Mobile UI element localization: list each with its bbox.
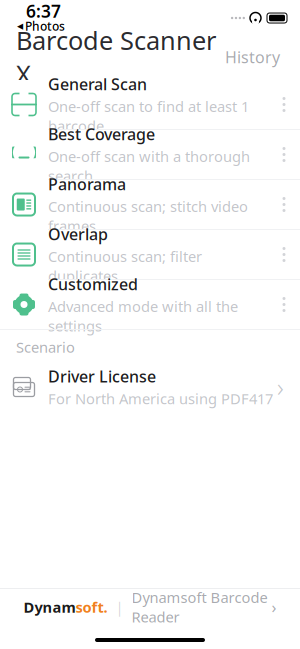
staticText: Panorama [48,173,126,195]
button[interactable]: Driver License [0,364,300,410]
button[interactable]: History [221,38,284,76]
staticText: History [225,46,280,68]
staticText: Dynam [23,597,75,617]
button[interactable]: Dynam [0,589,300,625]
staticText: | [107,597,131,617]
staticText: Continuous scan; stitch video frames [48,197,248,236]
staticText: Photos [25,18,65,34]
staticText: Customized [48,273,138,295]
staticText: Advanced mode with all the settings [48,297,238,336]
staticText: 6:37 [26,0,61,22]
button[interactable]: More options [268,82,300,126]
button[interactable]: More options [268,182,300,226]
staticText: General Scan [48,73,147,95]
staticText: Driver License [48,366,156,387]
button[interactable]: General Scan [0,80,300,129]
staticText: › [277,370,284,404]
staticText: Continuous scan; filter duplicates [48,247,202,286]
button[interactable]: Overlap [0,230,300,279]
staticText: › [267,596,276,618]
button[interactable]: Panorama [0,180,300,229]
button[interactable]: Customized [0,280,300,329]
staticText: Barcode Scanner X [16,23,216,91]
staticText: For North America using PDF417 [48,389,273,408]
button[interactable]: More options [268,132,300,176]
button[interactable]: More options [268,232,300,276]
button[interactable]: More options [268,282,300,326]
staticText: Overlap [48,223,108,245]
staticText: Scenario [16,337,75,357]
staticText: ◀ [17,21,23,31]
staticText: soft. [75,597,107,617]
staticText: Best Coverage [48,123,155,145]
staticText: Dynamsoft Barcode Reader [131,587,267,626]
staticText: One-off scan with a thorough search [48,147,250,186]
button[interactable]: ◀ [17,18,65,34]
button[interactable]: Best Coverage [0,130,300,179]
staticText: One-off scan to find at least 1 barcode [48,97,249,136]
